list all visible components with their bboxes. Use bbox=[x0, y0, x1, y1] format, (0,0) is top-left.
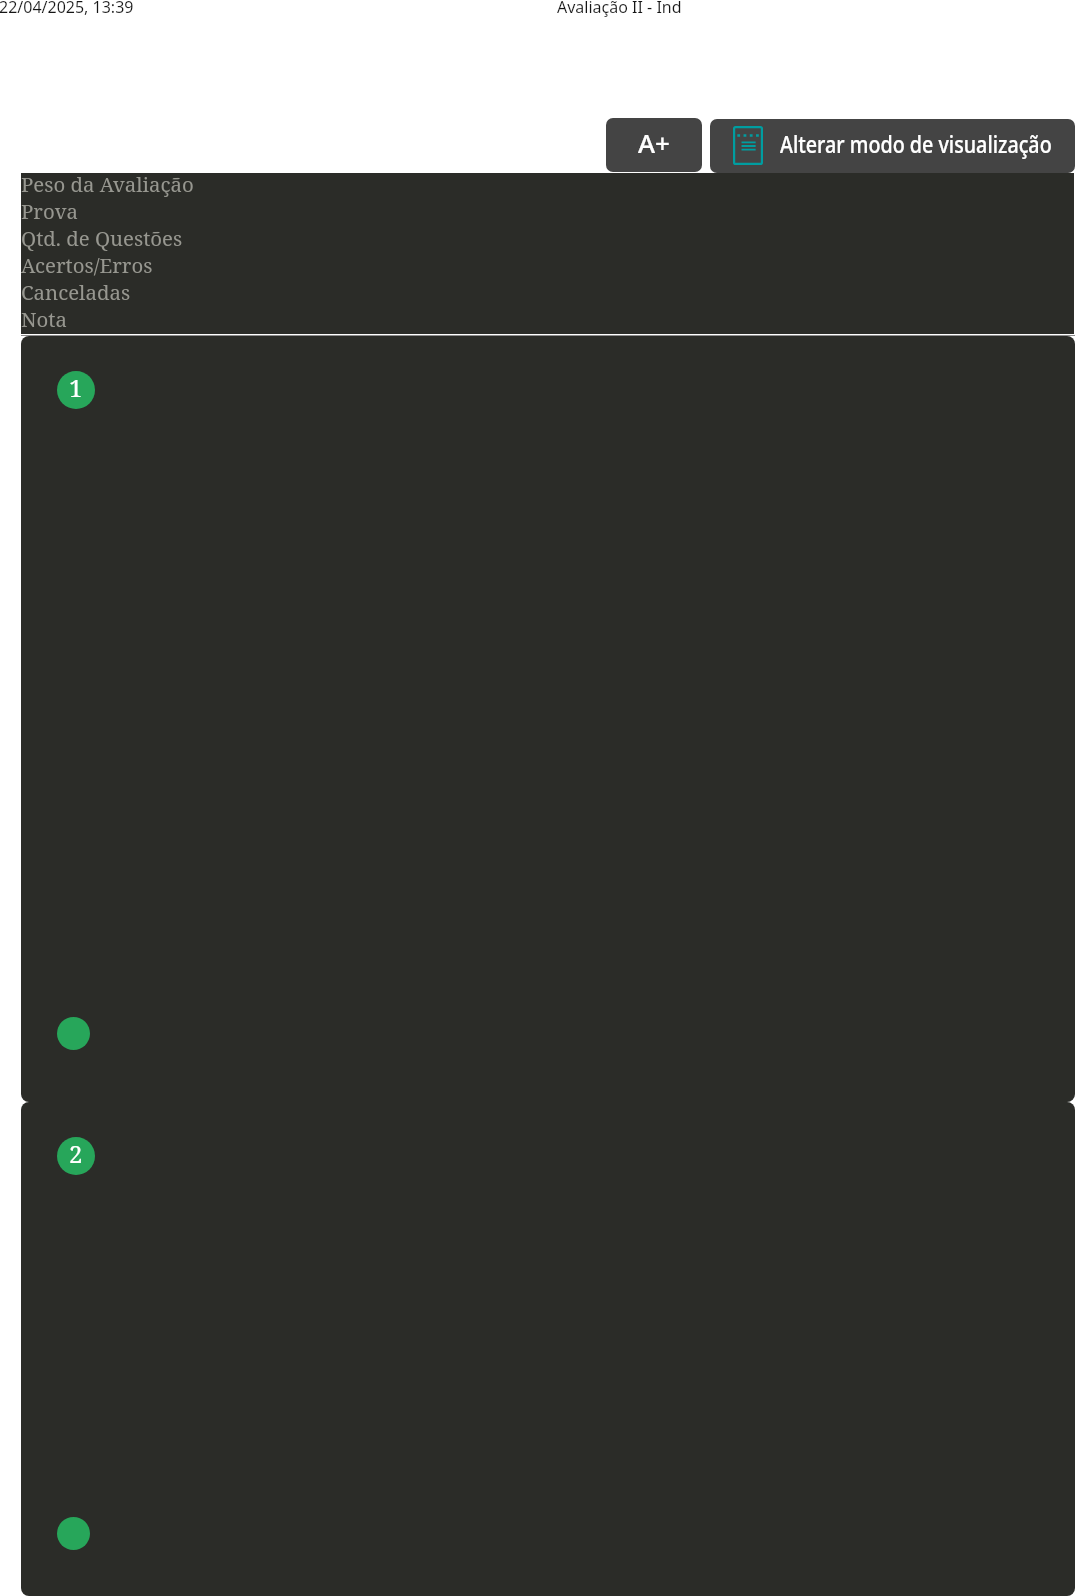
other: Alternativa selecionada bbox=[57, 1517, 90, 1550]
staticText: Prova bbox=[21, 197, 78, 225]
staticText: Nota bbox=[21, 305, 67, 333]
other: Alternativa selecionada bbox=[57, 1017, 90, 1050]
button[interactable]: 2 bbox=[21, 1102, 1075, 1596]
staticText: Canceladas bbox=[21, 278, 131, 306]
staticText: Alterar modo de visualização bbox=[780, 127, 1052, 160]
staticText: Acertos/Erros bbox=[21, 251, 153, 279]
other: Modo de visualização bbox=[733, 126, 763, 165]
button[interactable]: 1 bbox=[21, 336, 1075, 1102]
staticText: Avaliação II - Ind bbox=[557, 0, 682, 18]
staticText: 2 bbox=[69, 1137, 83, 1170]
staticText: 1 bbox=[69, 371, 83, 404]
staticText: 22/04/2025, 13:39 bbox=[0, 0, 134, 18]
button[interactable]: A+ bbox=[606, 118, 702, 172]
staticText: A+ bbox=[638, 125, 670, 160]
staticText: Peso da Avaliação bbox=[21, 170, 194, 198]
staticText: Qtd. de Questões bbox=[21, 224, 183, 252]
button[interactable]: Modo de visualização bbox=[710, 119, 1075, 173]
